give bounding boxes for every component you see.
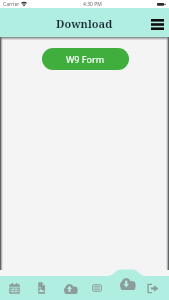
staticText: Download [56,16,113,31]
button[interactable]: Photos [29,270,57,300]
staticText: Carrier [3,1,20,8]
button[interactable]: Documents [85,270,113,300]
button[interactable]: Menu [149,16,165,32]
button[interactable]: Logout [141,270,169,300]
staticText: 4:30 PM [83,1,102,8]
button[interactable]: Calendar [0,270,29,300]
staticText: W9 Form [66,53,105,65]
button[interactable]: Upload [57,270,85,300]
button[interactable]: W9 Form [42,48,129,70]
button[interactable]: Download [113,270,141,300]
